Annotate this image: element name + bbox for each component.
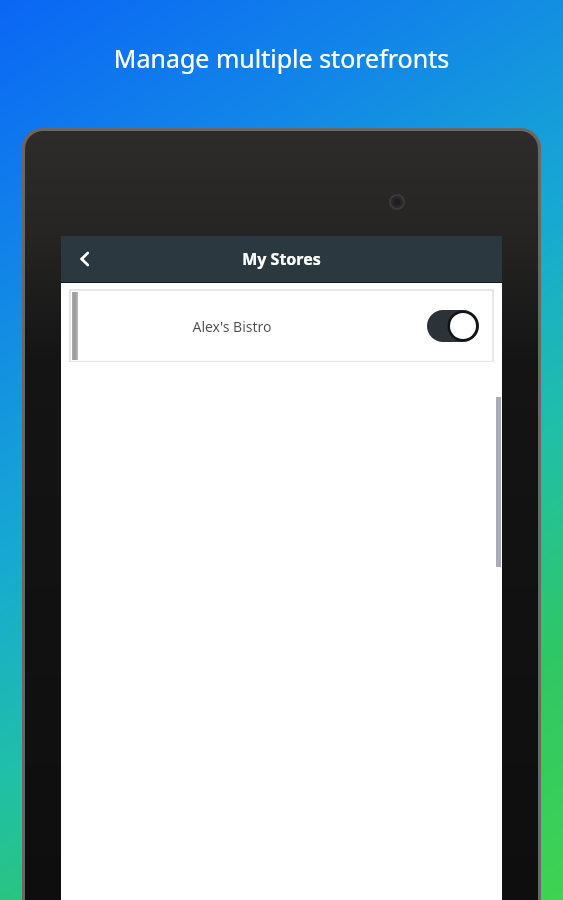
button[interactable]: Alex's Bistro — [70, 290, 493, 362]
staticText: Manage multiple storefronts — [0, 41, 563, 75]
button[interactable]: Back — [61, 236, 109, 282]
staticText: Alex's Bistro — [82, 317, 382, 336]
button[interactable]: Enable Alex's Bistro — [427, 310, 479, 342]
staticText: My Stores — [61, 248, 502, 270]
